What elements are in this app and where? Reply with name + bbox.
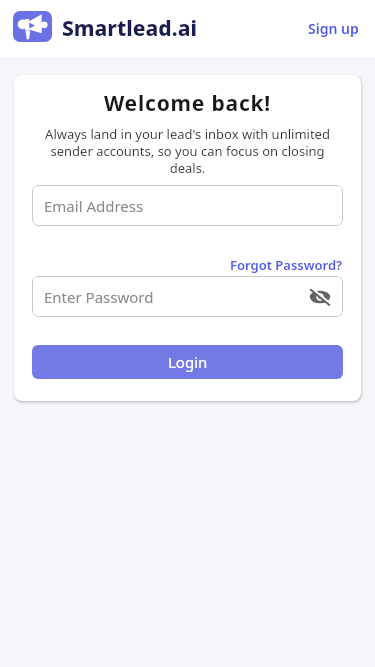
staticText: Welcome back! [32, 89, 343, 118]
staticText: Email Address [44, 196, 144, 216]
button[interactable]: Sign up [305, 13, 362, 44]
button[interactable]: Forgot Password? [230, 256, 343, 274]
staticText: Always land in your lead's inbox with un… [38, 125, 337, 177]
staticText: Login [168, 352, 208, 372]
staticText: Smartlead.ai [62, 14, 198, 43]
button[interactable]: Enter Password [32, 276, 343, 317]
button[interactable]: Email Address [32, 185, 343, 226]
staticText: Forgot Password? [230, 256, 343, 274]
staticText: Sign up [308, 19, 359, 38]
staticText: Enter Password [44, 287, 154, 307]
button[interactable]: Login [32, 345, 343, 379]
